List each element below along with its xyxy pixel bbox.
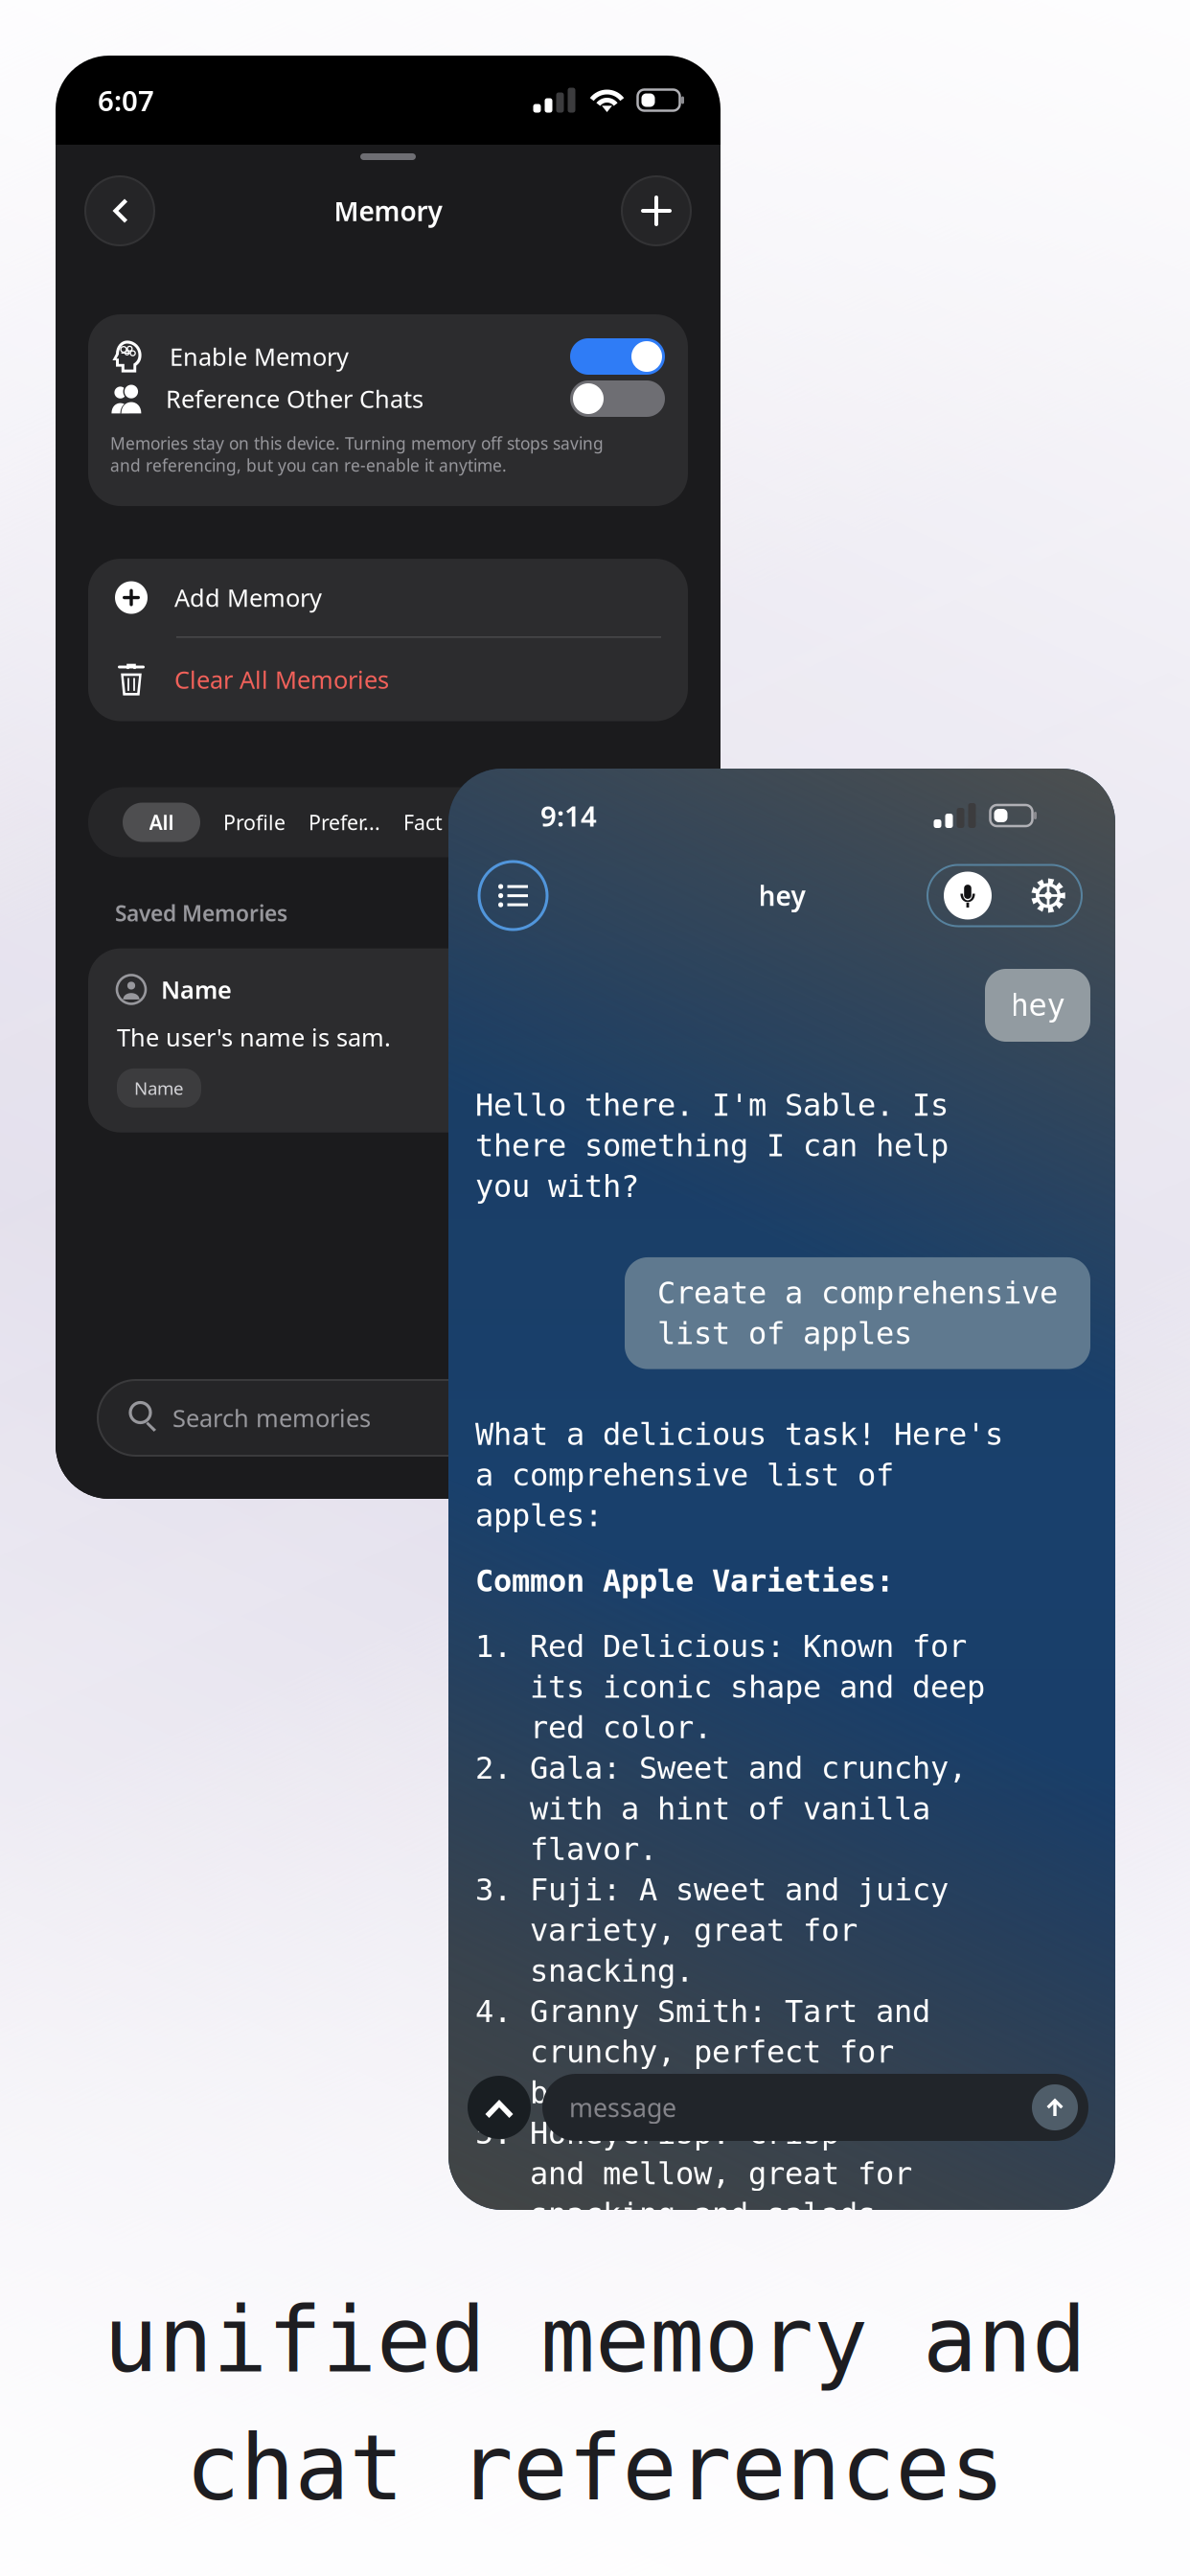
staticText: Search memories: [172, 1402, 371, 1434]
staticText: Saved Memories: [115, 898, 287, 927]
staticText: Hello there. I'm Sable. Is there somethi…: [475, 1088, 949, 1204]
staticText: 9:14: [540, 797, 597, 834]
staticText: Memories stay on this device. Turning me…: [110, 432, 604, 476]
staticText: Clear All Memories: [174, 663, 389, 696]
staticText: Enable Memory: [170, 340, 349, 373]
staticText: message: [569, 2090, 676, 2124]
staticText: 1. Red Delicious: Known for its iconic s…: [475, 1629, 985, 2272]
staticText: Add Memory: [174, 581, 322, 614]
button[interactable]: Name: [88, 948, 688, 1132]
button[interactable]: Conversations: [479, 862, 547, 930]
button[interactable]: Add Memory: [115, 559, 661, 636]
button[interactable]: Profile: [212, 803, 297, 842]
staticText: hey: [1010, 988, 1065, 1023]
staticText: Name: [134, 1076, 184, 1100]
staticText: Name: [161, 973, 232, 1005]
staticText: Prefer...: [309, 809, 380, 836]
button[interactable]: Clear All Memories: [115, 638, 661, 721]
button[interactable]: Add memory: [622, 176, 691, 245]
button[interactable]: Fact: [392, 803, 454, 842]
button[interactable]: Voice input: [944, 872, 992, 920]
button[interactable]: Settings: [1030, 877, 1066, 914]
staticText: Common Apple Varieties:: [475, 1564, 894, 1598]
button[interactable]: Send: [1032, 2084, 1078, 2130]
button[interactable]: All: [123, 803, 200, 842]
staticText: hey: [758, 878, 805, 913]
staticText: Reference Other Chats: [166, 383, 423, 415]
staticText: Fact: [403, 809, 443, 836]
button[interactable]: Expand composer: [468, 2076, 531, 2139]
staticText: Profile: [223, 809, 286, 836]
button[interactable]: Prefer...: [297, 803, 392, 842]
staticText: The user's name is sam.: [117, 1021, 391, 1053]
button[interactable]: Back: [85, 176, 154, 245]
staticText: chat references: [185, 2416, 1005, 2519]
staticText: Memory: [334, 193, 442, 229]
staticText: What a delicious task! Here's a comprehe…: [475, 1417, 1003, 1533]
staticText: Create a comprehensive list of apples: [657, 1276, 1058, 1351]
staticText: All: [149, 809, 174, 836]
staticText: 6:07: [98, 81, 154, 119]
staticText: unified memory and: [103, 2288, 1087, 2391]
